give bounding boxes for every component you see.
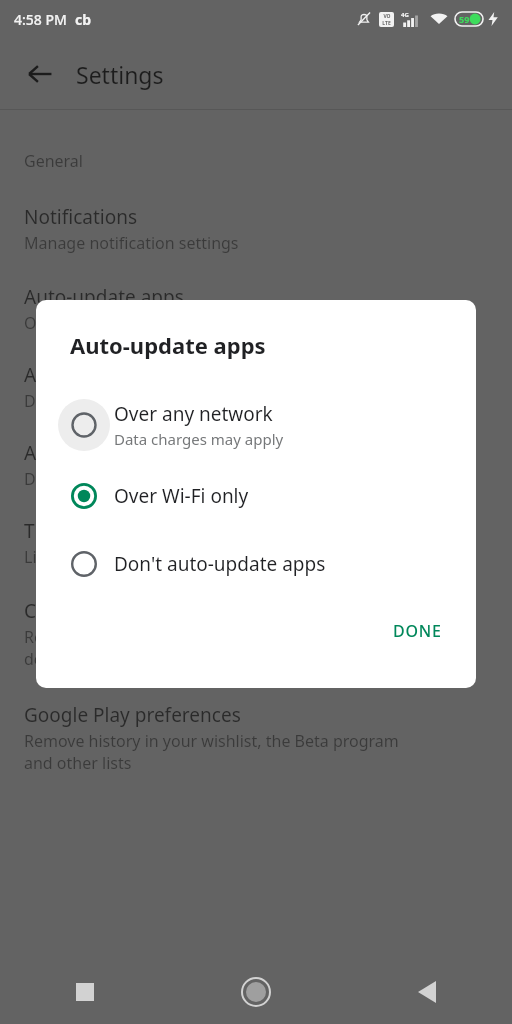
staticText: Over any network: [114, 401, 273, 427]
button[interactable]: Back: [18, 52, 62, 96]
button[interactable]: Auto-play videos: [0, 362, 512, 412]
button[interactable]: Recent apps: [0, 960, 170, 1024]
staticText: Over Wi-Fi only: [24, 312, 138, 334]
staticText: cb: [75, 10, 92, 29]
button[interactable]: Notifications: [0, 204, 512, 254]
staticText: Auto-update apps: [24, 284, 184, 310]
button[interactable]: Theme: [0, 518, 512, 568]
staticText: Auto-update apps: [70, 330, 266, 360]
staticText: Remove history in your wishlist, the Bet…: [24, 730, 399, 774]
staticText: Theme: [24, 518, 86, 544]
staticText: General: [24, 150, 83, 172]
staticText: 59: [459, 13, 470, 25]
button[interactable]: Back: [341, 960, 512, 1024]
staticText: Auto-play videos: [24, 362, 172, 388]
staticText: Clear local search history: [24, 598, 247, 624]
staticText: Notifications: [24, 204, 138, 230]
staticText: Remove searches that you have performed …: [24, 626, 419, 670]
staticText: Over Wi-Fi only: [114, 483, 249, 509]
button[interactable]: DONE: [377, 610, 458, 652]
staticText: Data charges may apply: [24, 390, 205, 412]
staticText: 4:58 PM: [14, 10, 67, 29]
staticText: Manage notification settings: [24, 232, 239, 254]
button[interactable]: Over Wi-Fi only: [36, 462, 476, 530]
staticText: Google Play preferences: [24, 702, 241, 728]
button[interactable]: Auto-update apps: [0, 284, 512, 334]
staticText: Data charges may apply: [24, 468, 205, 490]
button[interactable]: Over any network: [36, 388, 476, 462]
button[interactable]: Don't auto-update apps: [36, 530, 476, 598]
button[interactable]: Home: [170, 960, 341, 1024]
button[interactable]: Clear local search history: [0, 598, 512, 670]
staticText: Light: [24, 546, 63, 568]
staticText: App download preference: [24, 440, 255, 466]
staticText: Don't auto-update apps: [114, 551, 326, 577]
button[interactable]: Google Play preferences: [0, 702, 512, 774]
staticText: DONE: [393, 620, 442, 642]
staticText: VO: [383, 13, 391, 20]
staticText: Settings: [76, 59, 164, 90]
staticText: Data charges may apply: [114, 429, 284, 449]
button[interactable]: App download preference: [0, 440, 512, 490]
staticText: 4G: [401, 11, 409, 19]
staticText: LTE: [382, 20, 391, 27]
